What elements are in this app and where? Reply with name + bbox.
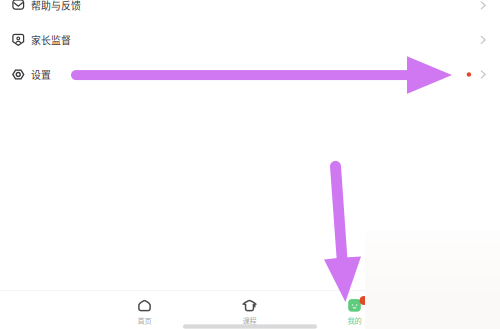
button[interactable]: 我的: [326, 300, 382, 324]
staticText: 帮助与反馈: [31, 0, 81, 12]
button[interactable]: 家长监督: [0, 23, 500, 57]
button[interactable]: 设置: [0, 57, 500, 92]
staticText: 设置: [31, 67, 51, 82]
staticText: 首页: [137, 315, 151, 326]
button[interactable]: 帮助与反馈: [0, 0, 500, 23]
button[interactable]: 首页: [116, 300, 172, 324]
staticText: 家长监督: [31, 33, 71, 47]
staticText: 课程: [242, 315, 256, 326]
staticText: 我的: [347, 315, 361, 326]
button[interactable]: 课程: [221, 300, 277, 324]
